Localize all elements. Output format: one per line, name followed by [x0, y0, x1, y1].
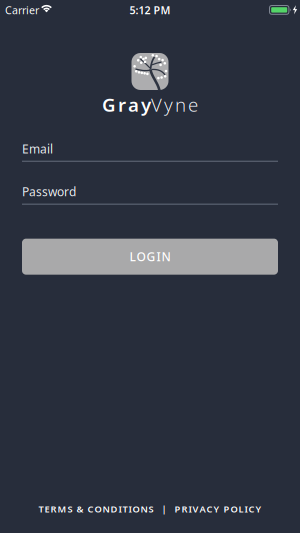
button[interactable]: Email: [22, 141, 278, 162]
staticText: V y n e: [151, 92, 198, 117]
staticText: Carrier: [5, 3, 39, 17]
staticText: 5:12 PM: [129, 3, 170, 17]
staticText: Email: [22, 141, 53, 157]
button[interactable]: P R I V A C Y P O L I C Y: [174, 503, 261, 515]
staticText: P R I V A C Y P O L I C Y: [174, 503, 261, 515]
staticText: T E R M S & C O N D I T I O N S: [38, 503, 153, 515]
staticText: L O G I N: [129, 249, 170, 265]
staticText: |: [153, 503, 174, 515]
button[interactable]: T E R M S & C O N D I T I O N S: [38, 503, 153, 515]
staticText: G r a y: [102, 92, 151, 117]
staticText: Password: [22, 184, 76, 200]
button[interactable]: L O G I N: [22, 239, 278, 275]
button[interactable]: Password: [22, 184, 278, 205]
